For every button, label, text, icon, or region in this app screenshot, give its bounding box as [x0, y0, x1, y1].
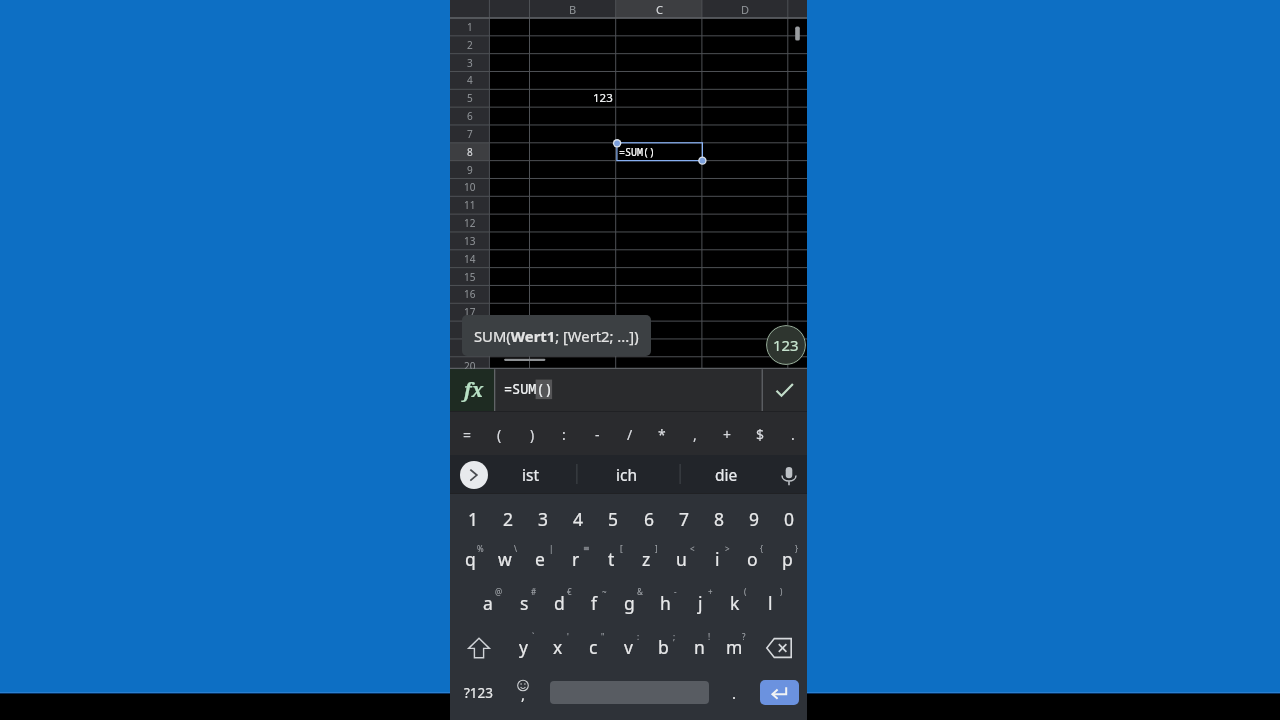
- button[interactable]: e: [523, 542, 557, 576]
- button[interactable]: More suggestions: [460, 461, 488, 489]
- button[interactable]: 5: [596, 502, 630, 536]
- button[interactable]: 18: [450, 321, 489, 339]
- button[interactable]: u: [664, 542, 698, 576]
- button[interactable]: 6: [632, 502, 666, 536]
- button[interactable]: -: [581, 412, 613, 456]
- button[interactable]: 9: [737, 502, 771, 536]
- button[interactable]: l: [753, 586, 787, 620]
- button[interactable]: d: [542, 586, 576, 620]
- button[interactable]: k: [718, 586, 752, 620]
- button[interactable]: /: [614, 412, 646, 456]
- button[interactable]: Enter: [760, 680, 799, 705]
- button[interactable]: 16: [450, 285, 489, 303]
- button[interactable]: 19: [450, 339, 489, 357]
- button[interactable]: +: [711, 412, 743, 456]
- button[interactable]: Backspace: [761, 630, 797, 666]
- button[interactable]: 12: [450, 214, 489, 232]
- button[interactable]: 10: [450, 178, 489, 196]
- button[interactable]: x: [541, 630, 575, 664]
- button[interactable]: =: [451, 412, 483, 456]
- button[interactable]: 3: [450, 54, 489, 72]
- button[interactable]: 1: [456, 502, 490, 536]
- button[interactable]: c: [576, 630, 610, 664]
- button[interactable]: ?123: [453, 677, 505, 708]
- staticText: 6: [467, 109, 473, 123]
- button[interactable]: C: [616, 0, 702, 18]
- button[interactable]: ich: [583, 455, 671, 493]
- staticText: 3: [467, 56, 473, 70]
- button[interactable]: p: [770, 542, 804, 576]
- button[interactable]: 3: [526, 502, 560, 536]
- button[interactable]: a: [471, 586, 505, 620]
- button[interactable]: w: [488, 542, 522, 576]
- button[interactable]: (: [483, 412, 515, 456]
- button[interactable]: 7: [450, 125, 489, 143]
- button[interactable]: f: [577, 586, 611, 620]
- button[interactable]: n: [682, 630, 716, 664]
- staticText: (: [497, 425, 502, 444]
- button[interactable]: v: [611, 630, 645, 664]
- button[interactable]: 8: [450, 143, 489, 161]
- staticText: 18: [464, 323, 476, 337]
- staticText: 5: [608, 507, 619, 531]
- button[interactable]: h: [648, 586, 682, 620]
- staticText: #: [531, 586, 537, 597]
- button[interactable]: 14: [450, 250, 489, 268]
- staticText: c: [589, 635, 598, 659]
- staticText: m: [726, 635, 743, 659]
- button[interactable]: j: [683, 586, 717, 620]
- button[interactable]: 6: [450, 107, 489, 125]
- button[interactable]: q: [453, 542, 487, 576]
- button[interactable]: Voice input: [775, 461, 803, 489]
- staticText: ;: [673, 631, 676, 642]
- staticText: :: [562, 425, 566, 444]
- button[interactable]: 4: [450, 71, 489, 89]
- button[interactable]: o: [735, 542, 769, 576]
- button[interactable]: 9: [450, 161, 489, 179]
- button[interactable]: 11: [450, 196, 489, 214]
- button[interactable]: 15: [450, 268, 489, 286]
- button[interactable]: 5: [450, 89, 489, 107]
- button[interactable]: Number format: [766, 325, 806, 365]
- button[interactable]: die: [682, 455, 770, 493]
- button[interactable]: 8: [702, 502, 736, 536]
- button[interactable]: .: [777, 412, 809, 456]
- button[interactable]: g: [612, 586, 646, 620]
- button[interactable]: :: [548, 412, 580, 456]
- button[interactable]: 4: [561, 502, 595, 536]
- staticText: u: [676, 547, 687, 571]
- staticText: 4: [467, 73, 473, 87]
- button[interactable]: Accept formula: [762, 369, 807, 411]
- button[interactable]: b: [646, 630, 680, 664]
- button[interactable]: 13: [450, 232, 489, 250]
- button[interactable]: B: [530, 0, 616, 18]
- button[interactable]: 7: [667, 502, 701, 536]
- button[interactable]: i: [700, 542, 734, 576]
- button[interactable]: *: [646, 412, 678, 456]
- button[interactable]: 1: [450, 18, 489, 36]
- button[interactable]: Insert function: [450, 369, 494, 411]
- button[interactable]: .: [720, 677, 748, 708]
- button[interactable]: 0: [772, 502, 806, 536]
- button[interactable]: 17: [450, 303, 489, 321]
- button[interactable]: D: [702, 0, 788, 18]
- button[interactable]: $: [744, 412, 776, 456]
- button[interactable]: Shift: [461, 630, 497, 666]
- button[interactable]: s: [507, 586, 541, 620]
- button[interactable]: t: [594, 542, 628, 576]
- button[interactable]: Emoji: [506, 676, 540, 710]
- button[interactable]: y: [506, 630, 540, 664]
- button[interactable]: 2: [450, 36, 489, 54]
- staticText: 5: [467, 91, 473, 105]
- button[interactable]: ist: [487, 455, 575, 493]
- button[interactable]: SUM(Wert1; [Wert2; ...]): [462, 315, 651, 356]
- button[interactable]: =SUM(): [619, 143, 655, 161]
- button[interactable]: m: [717, 630, 751, 664]
- button[interactable]: ): [516, 412, 548, 456]
- button[interactable]: z: [629, 542, 663, 576]
- button[interactable]: 20: [450, 357, 489, 375]
- button[interactable]: 2: [491, 502, 525, 536]
- button[interactable]: ,: [679, 412, 711, 456]
- button[interactable]: r: [559, 542, 593, 576]
